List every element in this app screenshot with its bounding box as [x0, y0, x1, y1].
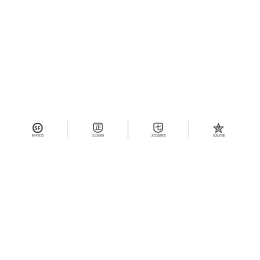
staticText: 顺丰发货: [32, 133, 44, 138]
staticText: 优: [216, 125, 221, 131]
staticText: 正品保障: [92, 133, 104, 138]
staticText: SF: [35, 124, 41, 131]
button[interactable]: 正: [68, 121, 128, 139]
staticText: 无忧退换货: [151, 133, 166, 138]
button[interactable]: 七: [128, 121, 188, 139]
staticText: 七: [155, 123, 161, 131]
staticText: 正: [95, 123, 101, 131]
staticText: 优质店铺: [212, 133, 224, 138]
button[interactable]: SF: [7, 121, 68, 139]
button[interactable]: 优: [188, 121, 249, 139]
